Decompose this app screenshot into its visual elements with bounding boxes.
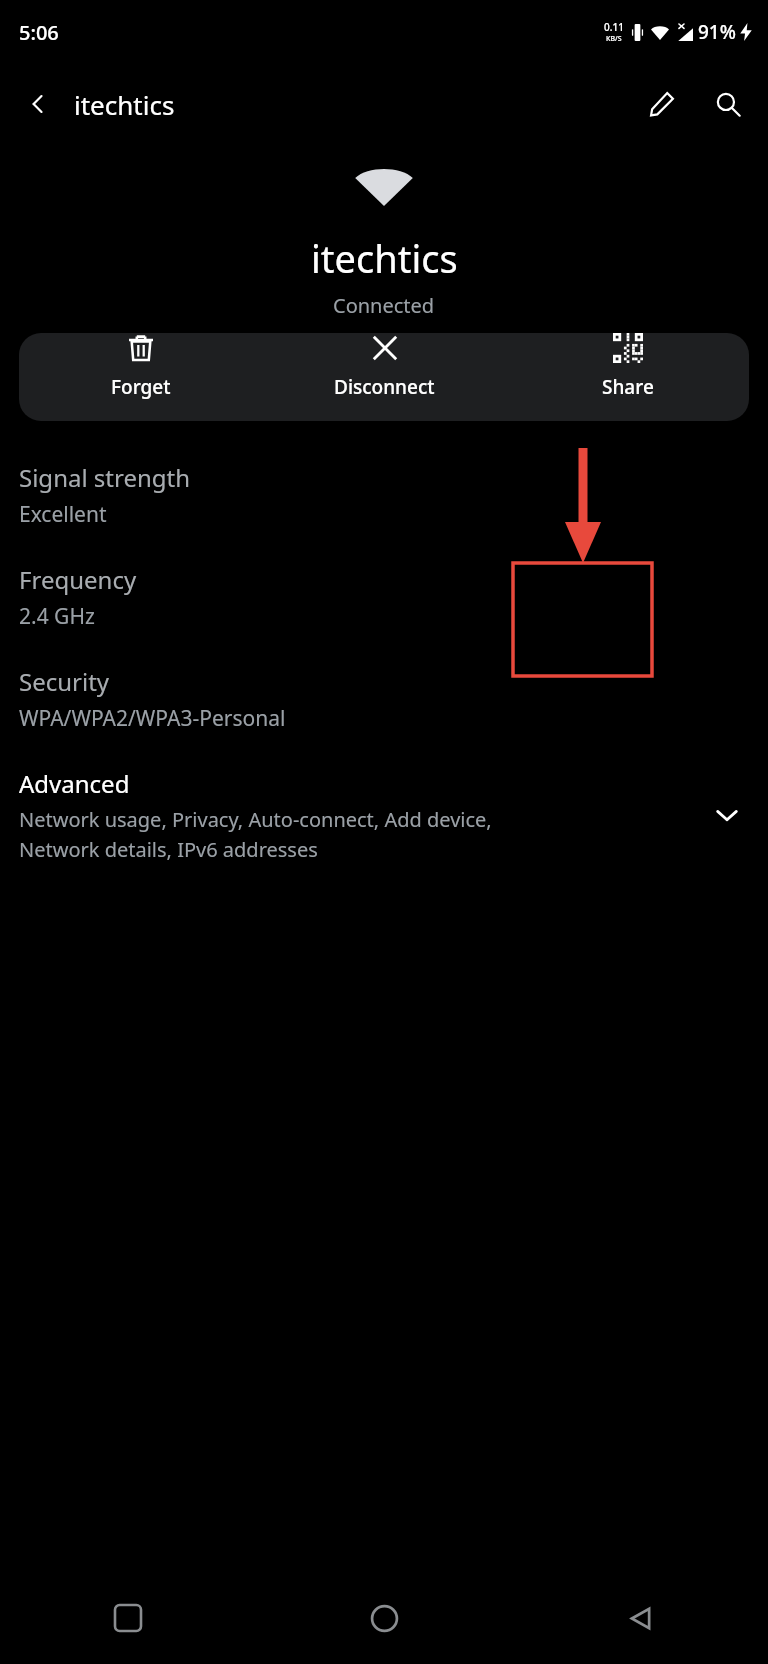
button[interactable]: Security [0,655,768,757]
staticText: Disconnect [334,374,435,400]
button[interactable]: Search [702,78,754,130]
staticText: Network usage, Privacy, Auto-connect, Ad… [19,806,492,833]
staticText: itechtics [311,232,458,284]
button[interactable]: Edit [636,78,688,130]
other: Expand [705,793,749,837]
staticText: WPA/WPA2/WPA3-Personal [19,704,286,733]
staticText: Connected [333,292,435,319]
button[interactable]: Frequency [0,553,768,655]
button[interactable]: Signal strength [0,451,768,553]
button[interactable]: Disconnect [263,333,506,400]
staticText: Share [602,374,654,400]
staticText: Excellent [19,500,107,529]
button[interactable]: Advanced [0,757,768,863]
staticText: 2.4 GHz [19,602,95,631]
staticText: KB/S [606,34,622,44]
button[interactable]: Back [612,1590,668,1646]
staticText: Advanced [19,767,130,800]
button[interactable]: Back [14,80,62,128]
button[interactable]: Home [356,1590,412,1646]
staticText: Signal strength [19,461,191,494]
button[interactable]: Recents [100,1590,156,1646]
staticText: Network details, IPv6 addresses [19,836,318,863]
staticText: Frequency [19,563,137,596]
staticText: Forget [111,374,171,400]
staticText: Security [19,665,110,698]
staticText: 91% [698,19,736,45]
staticText: 0.11 [604,20,624,34]
button[interactable]: Share [506,333,749,400]
staticText: 5:06 [19,19,59,46]
staticText: itechtics [74,87,175,122]
button[interactable]: Forget [19,333,263,400]
